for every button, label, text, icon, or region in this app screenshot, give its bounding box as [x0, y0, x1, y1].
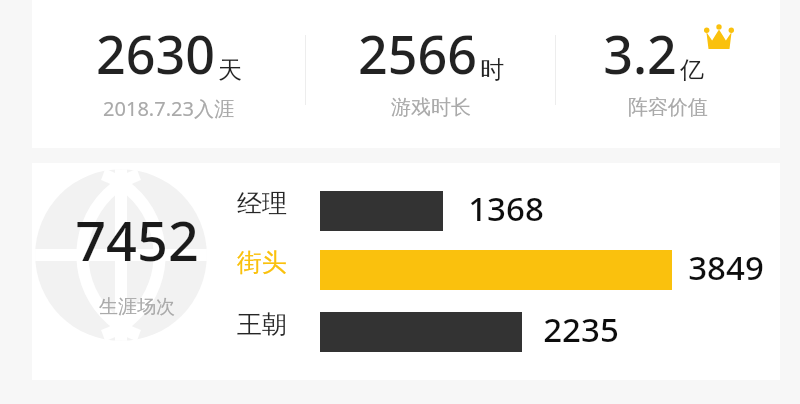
staticText: 7452 [75, 203, 199, 265]
button[interactable]: 2630 [32, 0, 305, 148]
button[interactable]: 2566 [306, 0, 555, 148]
other: Crown [704, 23, 734, 53]
staticText: 2235 [543, 307, 619, 349]
staticText: 天 [218, 55, 242, 85]
staticText: 2630 [96, 18, 215, 89]
button[interactable]: 街头 [237, 245, 312, 279]
button[interactable]: 7452 [32, 163, 780, 380]
button[interactable]: 3.2 [556, 0, 780, 148]
staticText: 街头 [237, 247, 287, 278]
staticText: 2018.7.23入涯 [103, 95, 234, 122]
staticText: 阵容价值 [628, 95, 708, 120]
staticText: 亿 [680, 55, 704, 85]
staticText: 2566 [358, 18, 477, 89]
staticText: 3849 [688, 245, 764, 287]
staticText: 生涯场次 [99, 295, 175, 319]
staticText: 游戏时长 [391, 95, 471, 120]
staticText: 经理 [237, 188, 287, 219]
staticText: 1368 [468, 186, 544, 228]
staticText: 王朝 [237, 309, 287, 340]
button[interactable]: 王朝 [237, 307, 312, 341]
button[interactable]: 经理 [237, 186, 312, 220]
staticText: 时 [480, 55, 504, 85]
staticText: 3.2 [603, 18, 677, 89]
